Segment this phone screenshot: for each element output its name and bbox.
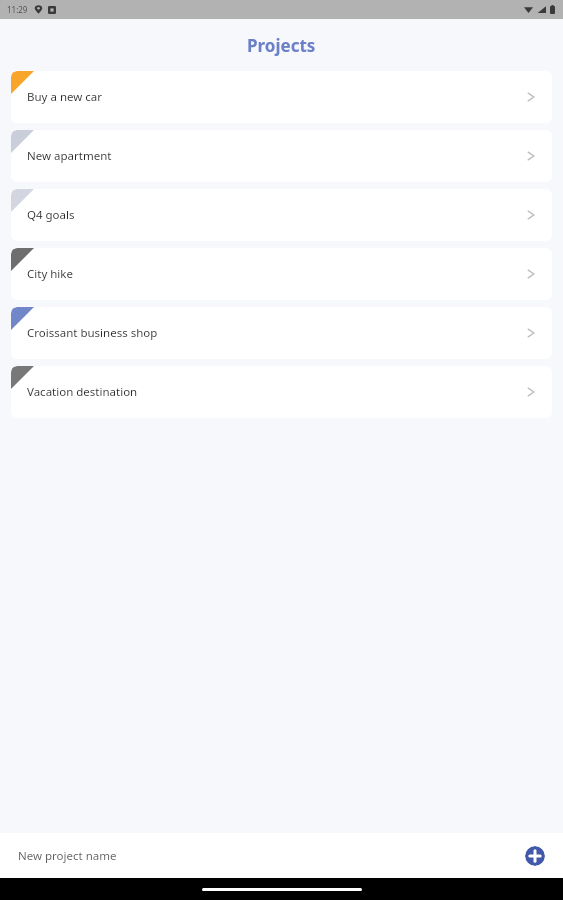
staticText: New project name — [18, 848, 117, 864]
staticText: 11:29 — [7, 4, 28, 15]
staticText: Vacation destination — [27, 384, 138, 400]
button[interactable]: Croissant business shop — [11, 307, 552, 359]
button[interactable]: Add project — [525, 846, 545, 866]
staticText: New apartment — [27, 148, 112, 164]
staticText: Croissant business shop — [27, 325, 158, 341]
button[interactable]: Q4 goals — [11, 189, 552, 241]
staticText: Q4 goals — [27, 207, 75, 223]
staticText: City hike — [27, 266, 73, 282]
button[interactable]: New apartment — [11, 130, 552, 182]
button[interactable]: New project name — [18, 848, 117, 864]
button[interactable]: Vacation destination — [11, 366, 552, 418]
button[interactable]: Buy a new car — [11, 71, 552, 123]
button[interactable]: City hike — [11, 248, 552, 300]
staticText: Projects — [247, 34, 316, 57]
staticText: Buy a new car — [27, 89, 102, 105]
